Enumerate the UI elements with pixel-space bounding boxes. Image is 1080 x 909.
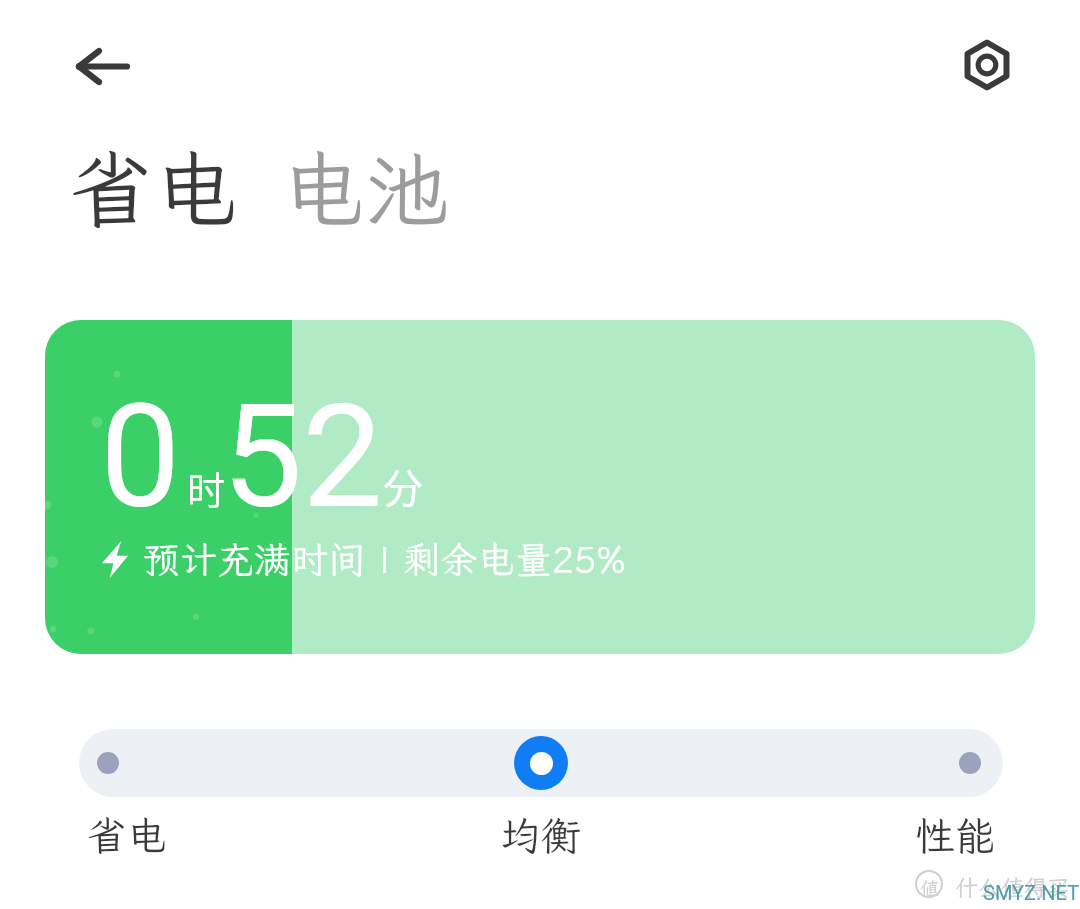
staticText: 省电 xyxy=(70,133,239,233)
button[interactable]: Back xyxy=(56,26,150,106)
staticText: 值 xyxy=(920,875,940,900)
staticText: 电池 xyxy=(281,133,450,233)
staticText: 时 xyxy=(187,460,226,515)
button[interactable]: 性能 xyxy=(895,797,1015,861)
staticText: 分 xyxy=(383,457,423,515)
button[interactable]: Settings xyxy=(951,29,1023,101)
staticText: 什么值得买 xyxy=(955,872,1070,902)
staticText: SMYZ.NET xyxy=(983,881,1080,904)
staticText: 省电 xyxy=(87,809,167,862)
button[interactable]: 省电 xyxy=(58,125,244,225)
staticText: 0 xyxy=(100,373,181,541)
button[interactable]: 电池 xyxy=(269,125,461,225)
staticText: 均衡 xyxy=(501,809,581,862)
button[interactable]: Performance xyxy=(959,752,981,774)
staticText: 预计充满时间 | 剩余电量25% xyxy=(143,535,626,584)
button[interactable]: Power saving xyxy=(97,752,119,774)
button[interactable]: 均衡 xyxy=(481,797,601,861)
staticText: 52 xyxy=(222,373,383,541)
button[interactable]: 0 xyxy=(45,320,1035,654)
staticText: 性能 xyxy=(915,809,995,862)
button[interactable]: 省电 xyxy=(67,797,187,861)
button[interactable]: Balanced xyxy=(514,736,568,790)
